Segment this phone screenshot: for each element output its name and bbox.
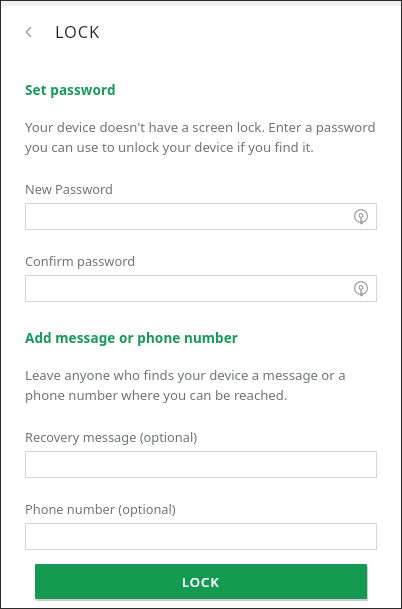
staticText: LOCK xyxy=(182,573,220,591)
staticText: Recovery message (optional) xyxy=(25,428,198,445)
button[interactable]: Recovery message xyxy=(25,451,377,478)
button[interactable]: Phone number xyxy=(25,523,377,550)
button[interactable]: Show new password xyxy=(25,203,377,230)
button[interactable]: LOCK xyxy=(35,564,367,599)
staticText: New Password xyxy=(25,180,113,197)
staticText: Phone number (optional) xyxy=(25,500,176,517)
staticText: LOCK xyxy=(55,20,101,42)
staticText: Your device doesn't have a screen lock. … xyxy=(25,118,377,156)
staticText: Add message or phone number xyxy=(25,329,238,347)
staticText: Leave anyone who finds your device a mes… xyxy=(25,366,377,404)
button[interactable]: Show confirm password xyxy=(25,275,377,302)
button[interactable]: Back xyxy=(15,18,43,46)
staticText: Set password xyxy=(25,81,116,99)
staticText: Confirm password xyxy=(25,252,136,269)
